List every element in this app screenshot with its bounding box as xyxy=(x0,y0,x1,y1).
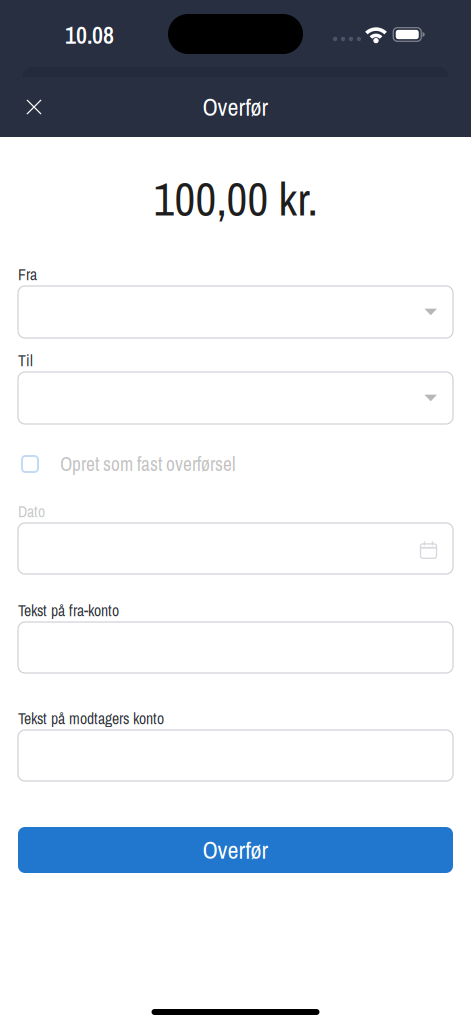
staticText: Tekst på fra-konto xyxy=(18,600,119,621)
button[interactable] xyxy=(18,286,453,338)
button[interactable]: Luk xyxy=(10,81,58,133)
button[interactable] xyxy=(18,372,453,424)
staticText: Fra xyxy=(18,264,37,285)
staticText: Overfør xyxy=(202,91,268,123)
staticText: 10.08 xyxy=(65,19,114,51)
staticText: 100,00 kr. xyxy=(153,168,317,230)
staticText: Dato xyxy=(18,501,45,522)
button[interactable]: Overfør xyxy=(18,827,453,873)
staticText: Opret som fast overførsel xyxy=(60,451,236,477)
staticText: Overfør xyxy=(202,834,268,866)
staticText: Til xyxy=(18,350,33,371)
staticText: Tekst på modtagers konto xyxy=(18,708,164,729)
button[interactable] xyxy=(18,523,453,574)
button[interactable]: Opret som fast overførsel xyxy=(18,456,453,472)
